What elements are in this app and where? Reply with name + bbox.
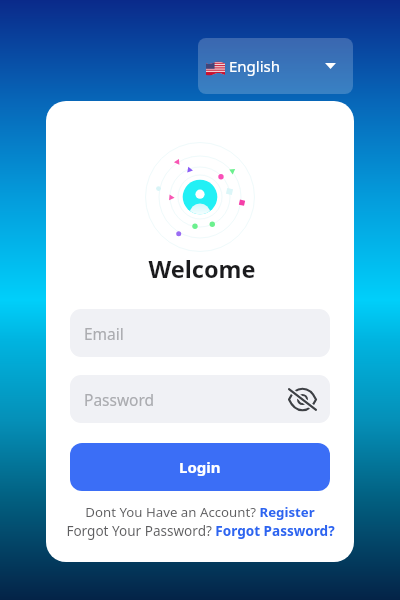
- button[interactable]: English: [198, 38, 353, 94]
- staticText: Welcome: [48, 253, 354, 285]
- button[interactable]: Show password: [283, 380, 321, 418]
- button[interactable]: Password: [70, 375, 330, 423]
- staticText: Email: [84, 323, 124, 344]
- staticText: Password: [84, 389, 155, 410]
- button[interactable]: Login: [70, 443, 330, 491]
- button[interactable]: Forgot Your Password? Forgot Password?: [66, 522, 335, 540]
- staticText: Login: [179, 457, 221, 477]
- button[interactable]: Email: [70, 309, 330, 357]
- staticText: English: [229, 56, 281, 76]
- button[interactable]: Dont You Have an Account? Register: [85, 503, 315, 521]
